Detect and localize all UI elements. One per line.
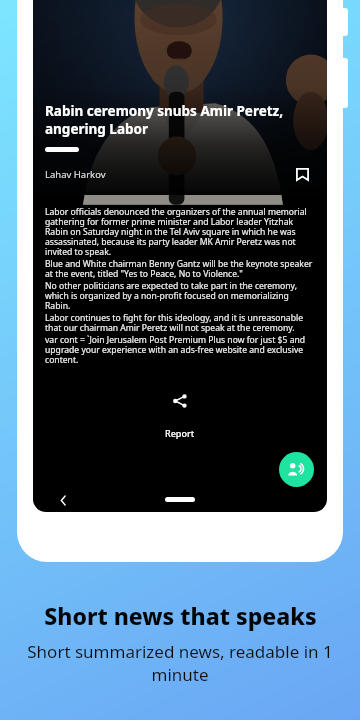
- button[interactable]: Share: [165, 386, 195, 416]
- staticText: No other politicians are expected to tak…: [45, 280, 315, 312]
- staticText: Report: [165, 427, 195, 439]
- button[interactable]: Report: [155, 424, 205, 442]
- staticText: Short summarized news, readable in 1 min…: [16, 640, 344, 686]
- button[interactable]: Home: [165, 497, 195, 502]
- button[interactable]: Bookmark: [289, 161, 315, 187]
- staticText: Labor continues to fight for this ideolo…: [45, 312, 315, 334]
- staticText: Blue and White chairman Benny Gantz will…: [45, 258, 315, 280]
- button[interactable]: Back: [52, 489, 74, 511]
- staticText: Short news that speaks: [44, 600, 317, 631]
- staticText: Labor officials denounced the organizers…: [45, 206, 315, 258]
- button[interactable]: Listen: [279, 452, 314, 487]
- staticText: var cont = `Join Jerusalem Post Premium …: [45, 334, 315, 366]
- staticText: Lahav Harkov: [45, 168, 289, 181]
- staticText: Rabin ceremony snubs Amir Peretz, angeri…: [45, 102, 315, 138]
